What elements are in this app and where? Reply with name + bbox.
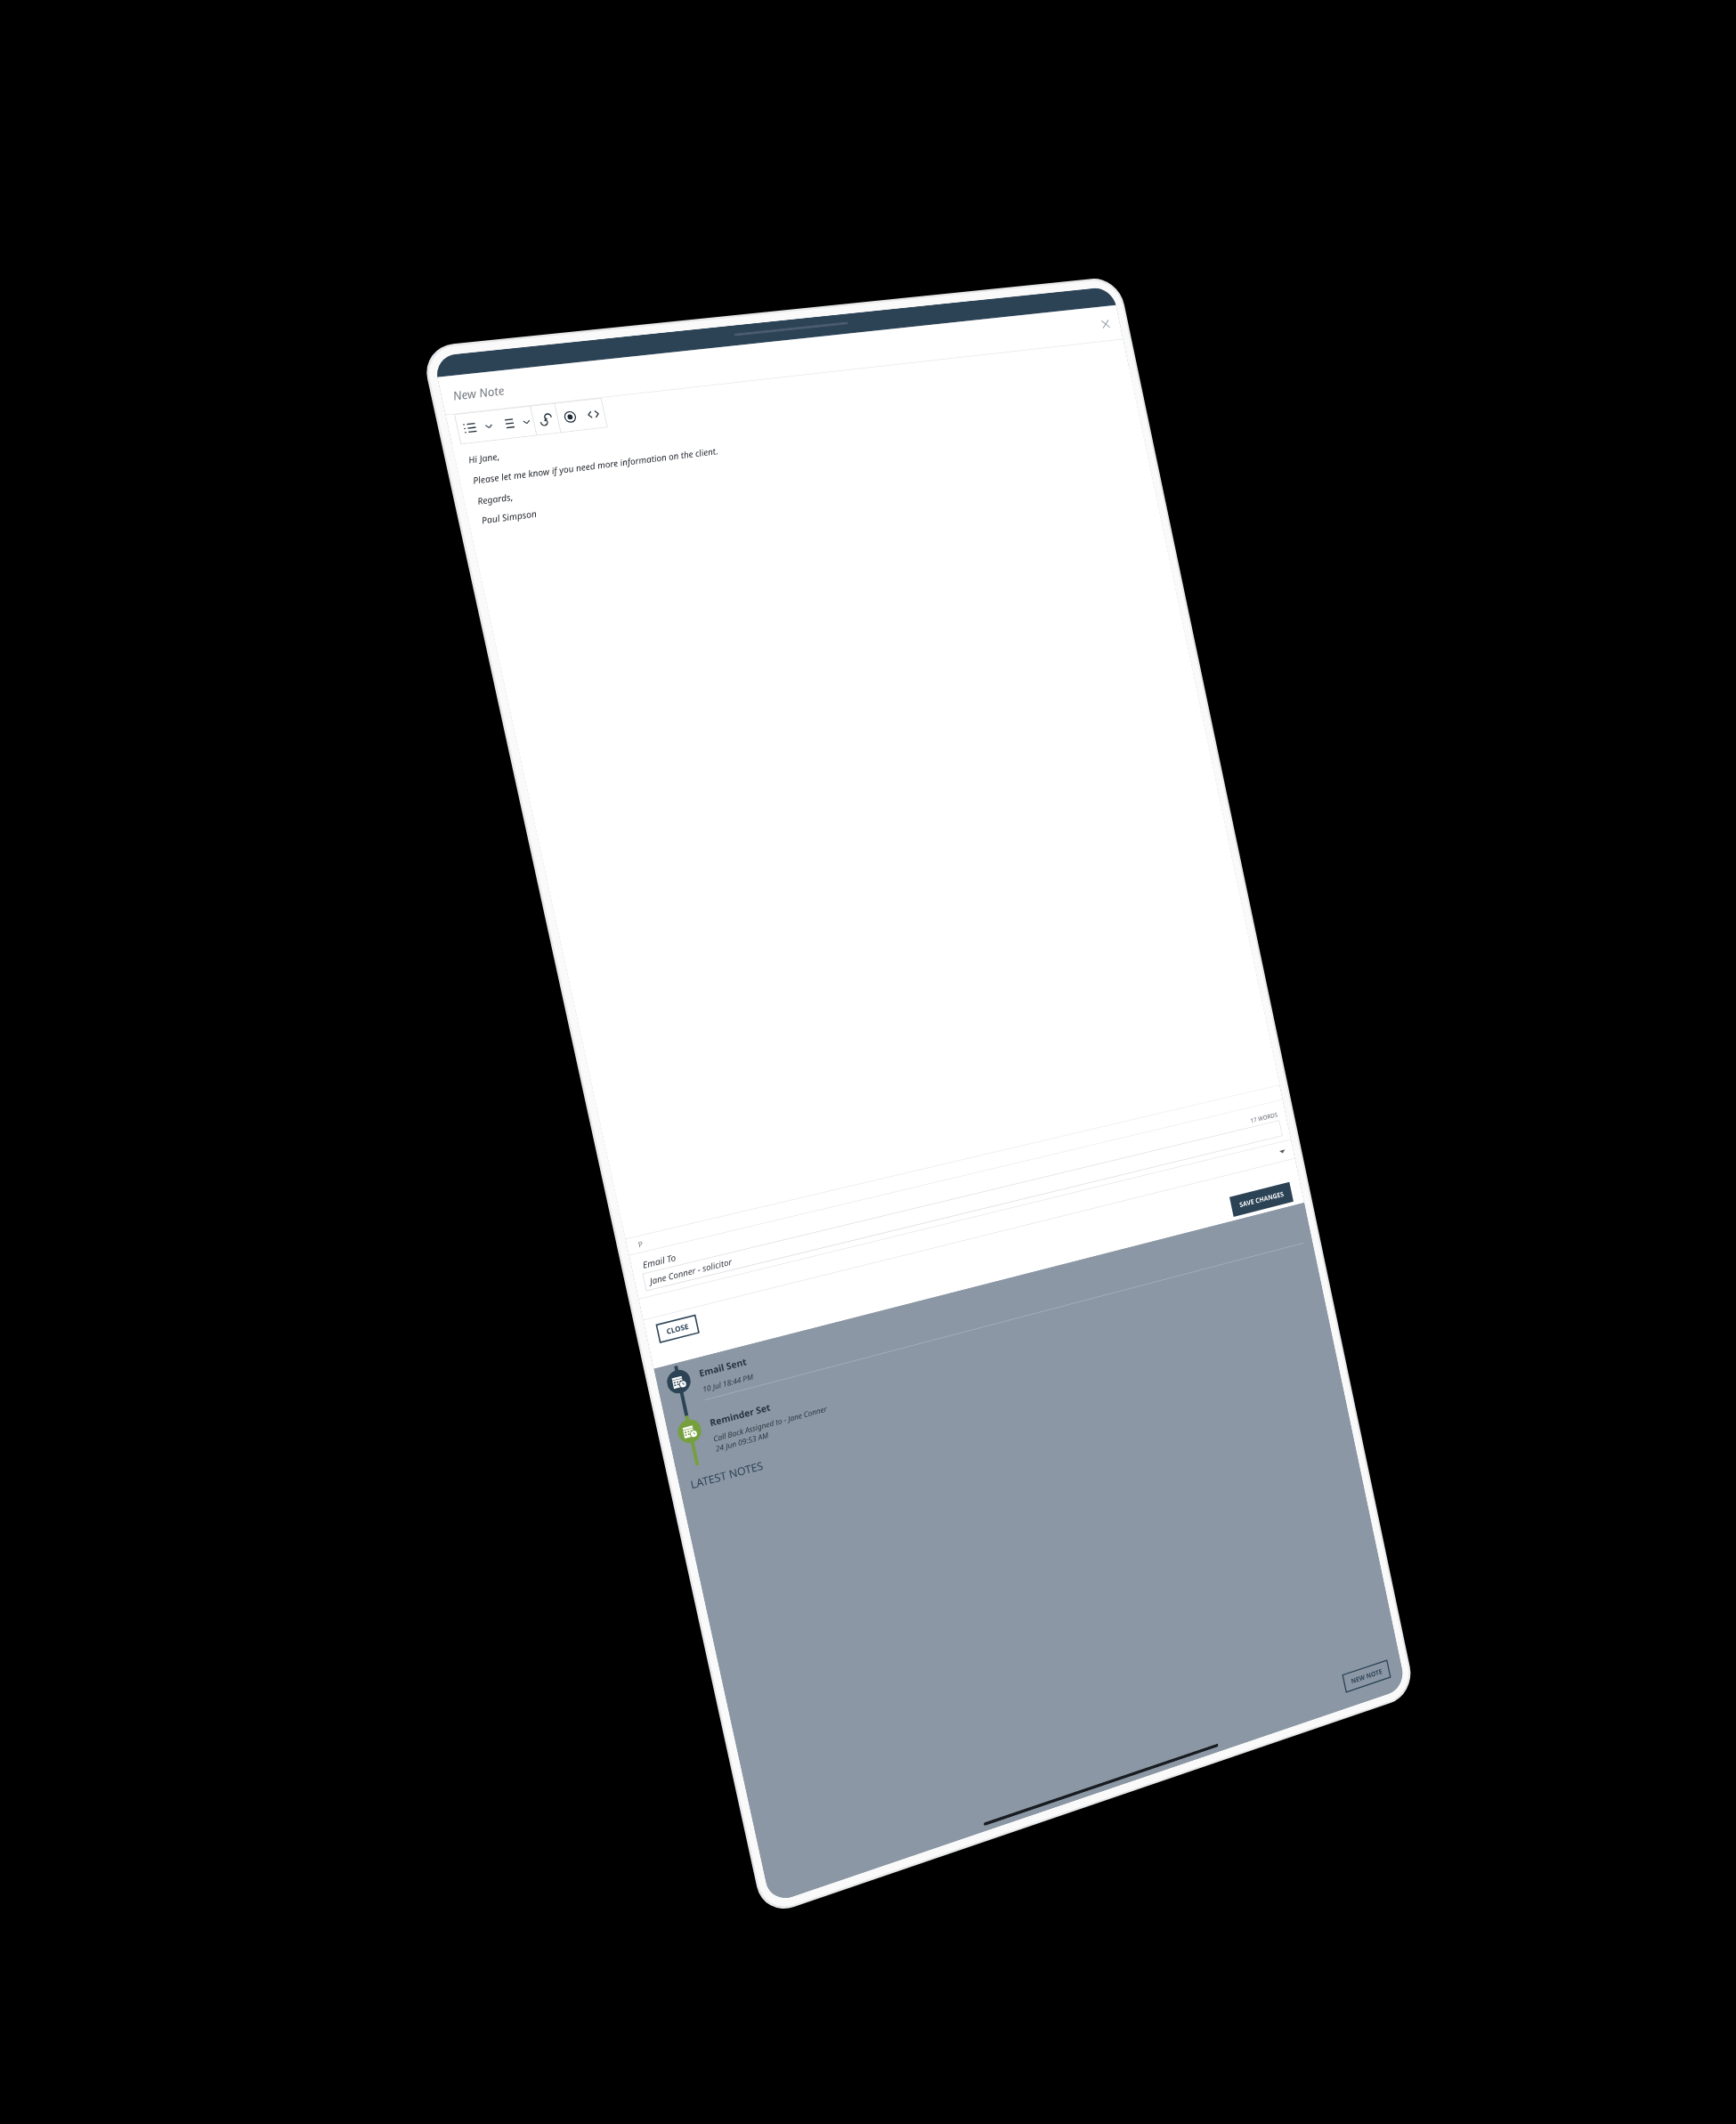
button[interactable]: Close [1096, 314, 1116, 334]
button[interactable]: Jane Conner - solicitor [642, 1120, 1283, 1291]
staticText: Please let me know if you need more info… [472, 445, 720, 487]
staticText: Reminder Set [709, 1401, 772, 1429]
staticText: Hi Jane, [467, 450, 501, 466]
staticText: 17 WORDS [1250, 1110, 1278, 1125]
staticText: NEW NOTE [1350, 1667, 1383, 1686]
button[interactable]: Preview [555, 400, 585, 433]
button[interactable]: CLOSE [656, 1314, 700, 1343]
button[interactable]: Numbered list [492, 407, 522, 440]
staticText: SAVE CHANGES [1239, 1189, 1285, 1209]
button[interactable]: Bullet list [454, 412, 485, 445]
button[interactable]: Reminder Set [665, 1250, 1324, 1471]
button[interactable]: NEW NOTE [1342, 1659, 1391, 1693]
staticText: 24 Jun 09:53 AM [715, 1430, 769, 1454]
staticText: CLOSE [665, 1321, 690, 1336]
staticText: Jane Conner - solicitor [649, 1256, 733, 1287]
staticText: Regards, [476, 491, 515, 507]
staticText: P [637, 1238, 644, 1250]
staticText: Paul Simpson [480, 507, 538, 527]
button[interactable]: Source code [578, 398, 608, 430]
staticText: LATEST NOTES [689, 1458, 764, 1492]
button[interactable]: Email Sent [654, 1205, 1314, 1421]
button[interactable]: Insert link [531, 403, 561, 436]
staticText: Email Sent [698, 1355, 748, 1380]
button[interactable]: More list options [478, 410, 499, 442]
staticText: Call Back Assigned to - Jane Conner [712, 1403, 828, 1444]
staticText: Email To [641, 1251, 677, 1271]
button[interactable]: More list options [516, 406, 536, 437]
button[interactable]: SAVE CHANGES [1229, 1182, 1293, 1217]
button[interactable]: Select recipient [648, 1142, 1287, 1317]
staticText: 10 Jul 18:44 PM [702, 1371, 754, 1394]
staticText: New Note [451, 382, 506, 404]
